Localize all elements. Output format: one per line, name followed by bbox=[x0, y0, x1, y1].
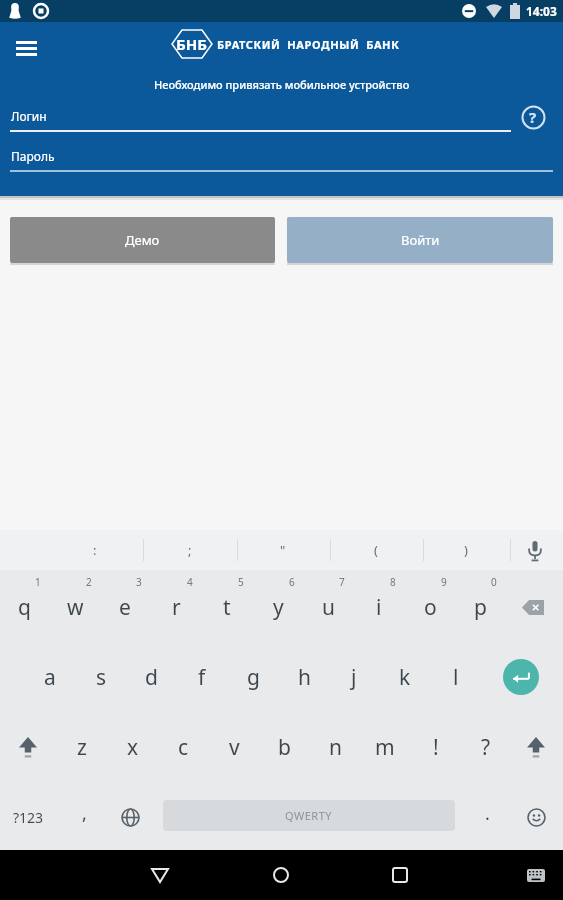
staticText: 1 bbox=[35, 575, 41, 589]
staticText: f bbox=[198, 663, 206, 692]
button[interactable]: d bbox=[127, 651, 175, 703]
staticText: ?123 bbox=[13, 808, 44, 827]
button[interactable]: g bbox=[229, 651, 277, 703]
button[interactable]: n bbox=[311, 721, 359, 773]
button[interactable]: y bbox=[254, 581, 302, 633]
staticText: ) bbox=[464, 541, 468, 559]
staticText: 9 bbox=[441, 575, 447, 589]
button[interactable] bbox=[520, 536, 550, 566]
button[interactable]: l bbox=[432, 651, 480, 703]
staticText: v bbox=[229, 733, 240, 762]
staticText: 4 bbox=[187, 575, 193, 589]
staticText: e bbox=[119, 593, 131, 622]
staticText: p bbox=[474, 593, 487, 622]
button[interactable]: " bbox=[243, 530, 323, 570]
button[interactable]: f bbox=[178, 651, 226, 703]
staticText: k bbox=[399, 663, 411, 692]
staticText: x bbox=[127, 733, 139, 762]
staticText: : bbox=[93, 541, 97, 559]
button[interactable]: i bbox=[355, 581, 403, 633]
button[interactable]: ? bbox=[519, 103, 547, 131]
staticText: j bbox=[351, 663, 357, 692]
button[interactable]: m bbox=[361, 721, 409, 773]
button[interactable]: k bbox=[381, 651, 429, 703]
button[interactable]: ) bbox=[426, 530, 506, 570]
staticText: b bbox=[278, 733, 291, 762]
staticText: n bbox=[329, 733, 342, 762]
button[interactable]: z bbox=[58, 721, 106, 773]
button[interactable]: b bbox=[260, 721, 308, 773]
staticText: m bbox=[375, 733, 395, 762]
button[interactable] bbox=[510, 721, 562, 773]
staticText: 8 bbox=[390, 575, 396, 589]
button[interactable]: , bbox=[60, 787, 108, 839]
staticText: 3 bbox=[136, 575, 142, 589]
button[interactable]: x bbox=[109, 721, 157, 773]
button[interactable]: : bbox=[55, 530, 135, 570]
staticText: h bbox=[298, 663, 311, 692]
staticText: " bbox=[280, 541, 286, 559]
staticText: БНБ bbox=[176, 34, 208, 54]
button[interactable]: h bbox=[280, 651, 328, 703]
staticText: c bbox=[178, 733, 189, 762]
staticText: q bbox=[18, 593, 31, 622]
staticText: t bbox=[223, 593, 231, 622]
staticText: s bbox=[96, 663, 107, 692]
staticText: i bbox=[376, 593, 382, 622]
staticText: u bbox=[322, 593, 335, 622]
staticText: g bbox=[247, 663, 260, 692]
button[interactable]: j bbox=[330, 651, 378, 703]
button[interactable]: p bbox=[456, 581, 504, 633]
button[interactable]: u bbox=[304, 581, 352, 633]
button[interactable]: r bbox=[152, 581, 200, 633]
staticText: Демо bbox=[125, 231, 160, 249]
button[interactable]: Войти bbox=[287, 217, 553, 263]
button[interactable] bbox=[495, 651, 547, 703]
button[interactable] bbox=[8, 30, 44, 66]
button[interactable]: o bbox=[406, 581, 454, 633]
staticText: a bbox=[44, 663, 56, 692]
button[interactable] bbox=[505, 581, 561, 633]
button[interactable]: ?123 bbox=[2, 791, 54, 843]
staticText: o bbox=[424, 593, 437, 622]
button[interactable]: a bbox=[26, 651, 74, 703]
button[interactable]: w bbox=[51, 581, 99, 633]
staticText: d bbox=[145, 663, 158, 692]
button[interactable]: . bbox=[463, 787, 511, 839]
button[interactable] bbox=[256, 850, 306, 900]
staticText: . bbox=[485, 801, 490, 826]
staticText: БРАТСКИЙ НАРОДНЫЙ БАНК bbox=[217, 37, 400, 52]
button[interactable]: ? bbox=[462, 721, 510, 773]
staticText: ( bbox=[374, 541, 378, 559]
staticText: 2 bbox=[86, 575, 92, 589]
staticText: w bbox=[67, 593, 84, 622]
staticText: ? bbox=[529, 107, 537, 127]
button[interactable] bbox=[135, 850, 185, 900]
staticText: z bbox=[77, 733, 87, 762]
button[interactable]: Демо bbox=[10, 217, 275, 263]
staticText: y bbox=[273, 593, 284, 622]
staticText: , bbox=[82, 801, 87, 826]
button[interactable] bbox=[375, 850, 425, 900]
button[interactable]: ! bbox=[412, 721, 460, 773]
button[interactable]: q bbox=[0, 581, 48, 633]
button[interactable]: v bbox=[210, 721, 258, 773]
button[interactable]: ( bbox=[336, 530, 416, 570]
button[interactable]: t bbox=[203, 581, 251, 633]
staticText: ; bbox=[188, 541, 192, 559]
button[interactable]: e bbox=[101, 581, 149, 633]
staticText: 5 bbox=[238, 575, 244, 589]
button[interactable] bbox=[2, 721, 54, 773]
staticText: ? bbox=[481, 733, 491, 762]
staticText: Пароль bbox=[11, 148, 55, 164]
button[interactable] bbox=[520, 860, 552, 890]
staticText: ! bbox=[433, 733, 439, 762]
button[interactable]: s bbox=[77, 651, 125, 703]
button[interactable]: ; bbox=[150, 530, 230, 570]
staticText: r bbox=[172, 593, 181, 622]
button[interactable] bbox=[106, 791, 154, 843]
button[interactable] bbox=[512, 791, 560, 843]
staticText: 14:03 bbox=[526, 3, 557, 19]
button[interactable]: QWERTY bbox=[163, 800, 455, 831]
button[interactable]: c bbox=[159, 721, 207, 773]
